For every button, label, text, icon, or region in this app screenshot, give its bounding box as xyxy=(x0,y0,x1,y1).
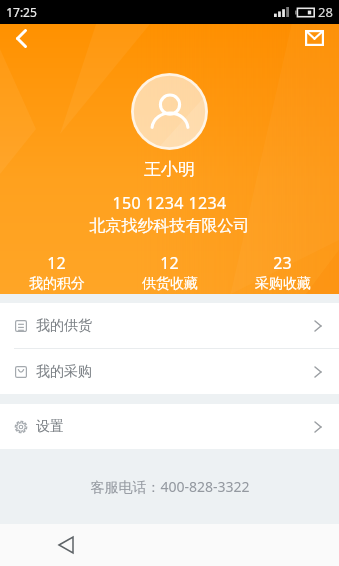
staticText: 我的供货 xyxy=(36,317,92,335)
staticText: 23 xyxy=(273,252,292,274)
button[interactable]: 我的供货 xyxy=(0,303,339,348)
button[interactable]: 23 xyxy=(226,248,339,297)
button[interactable]: 12 xyxy=(113,248,226,297)
button[interactable]: Messages xyxy=(298,24,330,52)
staticText: 客服电话：400-828-3322 xyxy=(90,477,250,496)
staticText: 17:25 xyxy=(6,4,37,20)
staticText: 12 xyxy=(160,252,179,274)
staticText: 供货收藏 xyxy=(142,275,198,293)
staticText: 12 xyxy=(47,252,66,274)
staticText: 设置 xyxy=(36,418,64,436)
staticText: 我的积分 xyxy=(29,275,85,293)
staticText: 北京找纱科技有限公司 xyxy=(0,216,339,236)
staticText: 我的采购 xyxy=(36,363,92,381)
staticText: 28 xyxy=(318,3,333,21)
button[interactable]: 12 xyxy=(0,248,113,297)
button[interactable]: 我的采购 xyxy=(0,349,339,394)
button[interactable]: Back xyxy=(54,533,78,557)
button[interactable]: Back xyxy=(2,24,40,53)
staticText: 150 1234 1234 xyxy=(0,192,339,214)
button[interactable]: 设置 xyxy=(0,404,339,449)
staticText: 采购收藏 xyxy=(255,275,311,293)
staticText: 王小明 xyxy=(0,159,339,180)
